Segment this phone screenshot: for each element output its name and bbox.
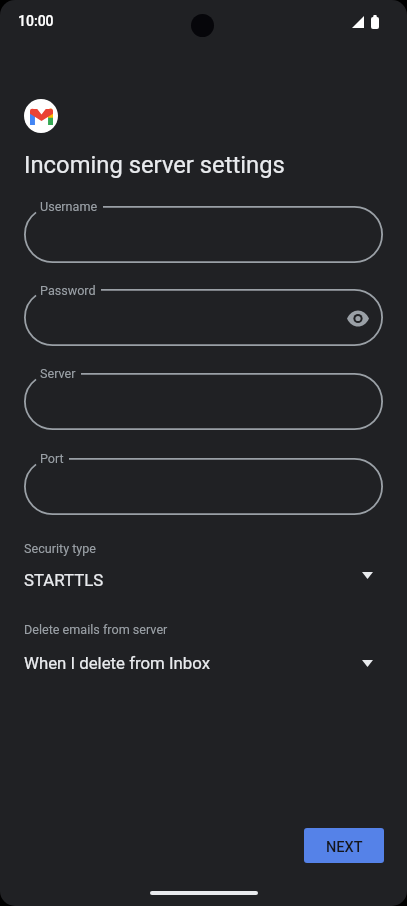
button[interactable]: Security type bbox=[0, 533, 407, 589]
staticText: NEXT bbox=[326, 839, 363, 856]
staticText: Security type bbox=[24, 541, 97, 556]
staticText: Port bbox=[40, 451, 64, 466]
button[interactable] bbox=[24, 458, 383, 515]
staticText: Server bbox=[40, 366, 76, 381]
staticText: STARTTLS bbox=[24, 570, 104, 590]
button[interactable] bbox=[24, 373, 383, 430]
staticText: Incoming server settings bbox=[24, 151, 285, 179]
button[interactable]: Show password bbox=[24, 289, 383, 346]
staticText: Username bbox=[40, 199, 98, 214]
staticText: Delete emails from server bbox=[24, 622, 168, 637]
button[interactable]: Show password bbox=[336, 296, 380, 340]
button[interactable]: NEXT bbox=[304, 828, 384, 863]
button[interactable] bbox=[24, 206, 383, 263]
button[interactable]: Delete emails from server bbox=[0, 614, 407, 670]
staticText: When I delete from Inbox bbox=[24, 653, 211, 673]
staticText: Password bbox=[40, 283, 96, 298]
staticText: 10:00 bbox=[18, 13, 54, 29]
